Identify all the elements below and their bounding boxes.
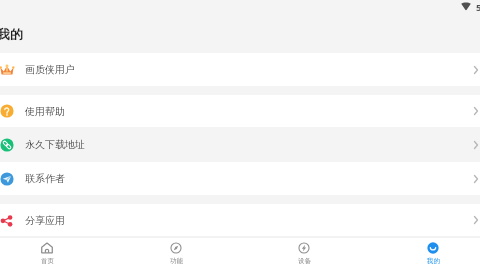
button[interactable]: 分享应用 xyxy=(0,204,480,236)
button[interactable]: 首页 xyxy=(0,236,102,270)
button[interactable]: 画质侠用户 xyxy=(0,53,480,86)
button[interactable]: 功能 xyxy=(121,236,231,270)
staticText: 设备 xyxy=(298,257,311,265)
staticText: 我的 xyxy=(0,26,23,42)
staticText: 永久下载地址 xyxy=(25,138,85,151)
staticText: 首页 xyxy=(41,257,54,265)
staticText: 5 xyxy=(476,1,480,14)
button[interactable]: 使用帮助 xyxy=(0,95,480,127)
staticText: 使用帮助 xyxy=(25,105,65,118)
staticText: 分享应用 xyxy=(25,214,65,227)
staticText: 画质侠用户 xyxy=(25,63,75,76)
staticText: 功能 xyxy=(170,257,183,265)
staticText: 联系作者 xyxy=(25,172,65,185)
button[interactable]: 永久下载地址 xyxy=(0,127,480,162)
staticText: 我的 xyxy=(427,257,440,265)
button[interactable]: 我的 xyxy=(378,236,480,270)
button[interactable]: 联系作者 xyxy=(0,162,480,195)
button[interactable]: 设备 xyxy=(249,236,359,270)
